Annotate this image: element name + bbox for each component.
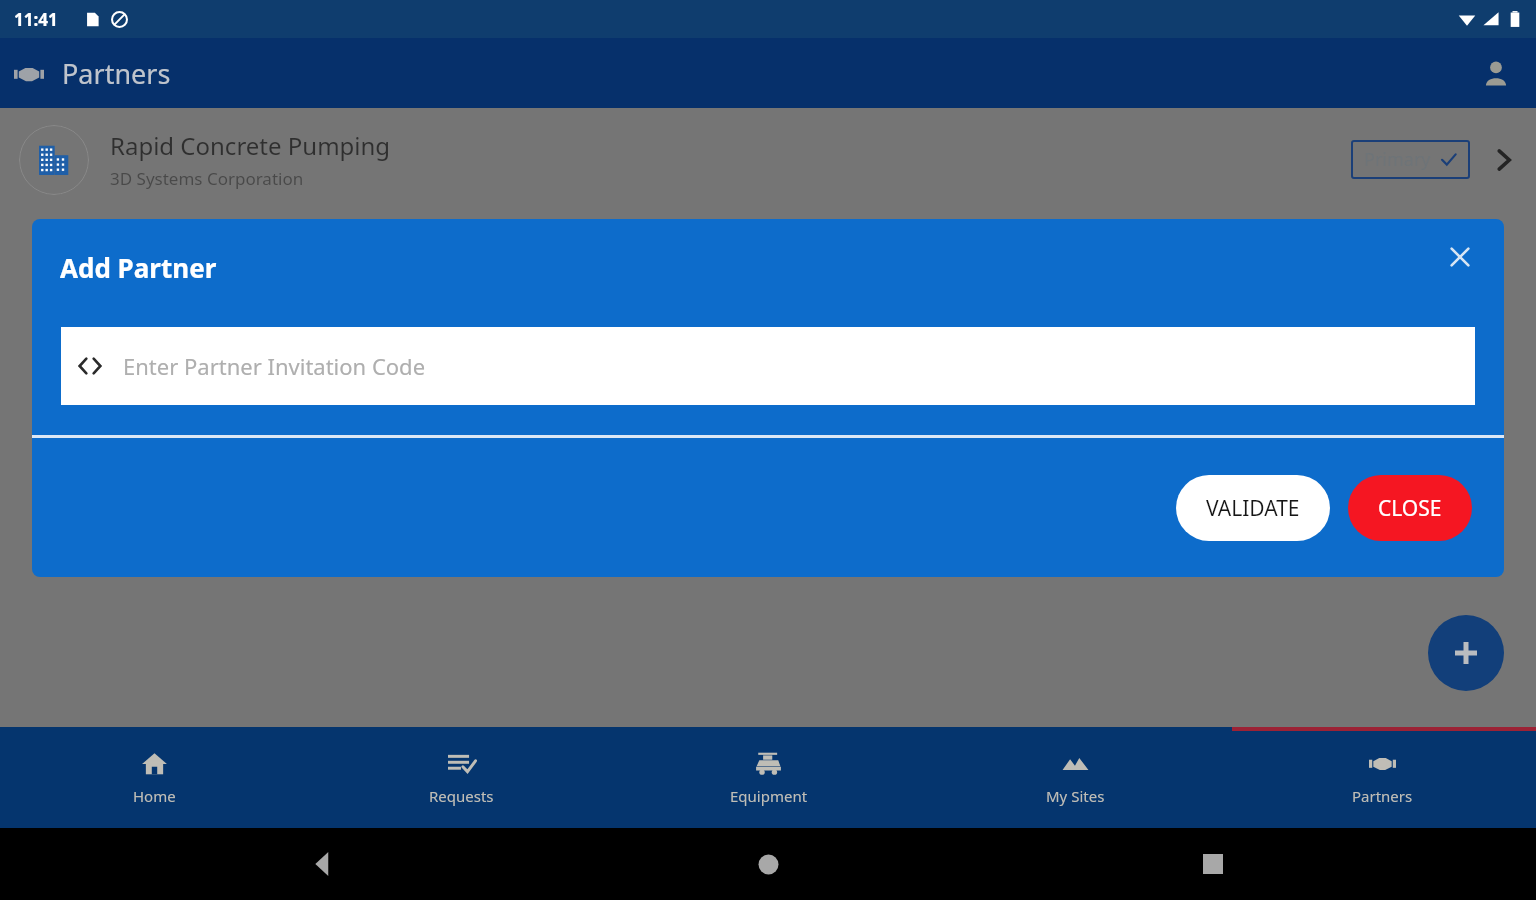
button[interactable]: Open partner bbox=[1484, 140, 1524, 180]
staticText: Rapid Concrete Pumping bbox=[110, 129, 391, 162]
button[interactable]: Primary bbox=[1351, 140, 1470, 179]
staticText: Partners bbox=[1352, 786, 1413, 806]
staticText: CLOSE bbox=[1378, 494, 1442, 523]
staticText: 11:41 bbox=[14, 8, 58, 31]
button[interactable]: Enter Partner Invitation Code bbox=[61, 327, 1475, 405]
button[interactable]: Home bbox=[745, 841, 791, 887]
staticText: Home bbox=[133, 786, 176, 806]
button[interactable]: My Sites bbox=[922, 727, 1229, 828]
staticText: Enter Partner Invitation Code bbox=[123, 351, 426, 381]
staticText: Equipment bbox=[730, 786, 808, 806]
button[interactable]: VALIDATE bbox=[1176, 475, 1330, 541]
button[interactable]: Home bbox=[0, 727, 308, 828]
staticText: Requests bbox=[429, 786, 494, 806]
staticText: VALIDATE bbox=[1206, 494, 1300, 523]
button[interactable]: Account bbox=[1474, 51, 1518, 95]
button[interactable]: Partners bbox=[1229, 727, 1536, 828]
button[interactable]: Requests bbox=[308, 727, 615, 828]
staticText: Partners bbox=[62, 55, 171, 92]
button[interactable]: Close bbox=[1436, 233, 1484, 281]
button[interactable]: Add partner bbox=[1428, 615, 1504, 691]
button[interactable]: CLOSE bbox=[1348, 475, 1472, 541]
staticText: My Sites bbox=[1046, 786, 1105, 806]
button[interactable]: Recents bbox=[1190, 841, 1236, 887]
staticText: Add Partner bbox=[60, 250, 217, 285]
button[interactable]: Equipment bbox=[615, 727, 922, 828]
button[interactable]: Back bbox=[300, 841, 346, 887]
button[interactable]: Rapid Concrete Pumping bbox=[0, 108, 1536, 211]
staticText: 3D Systems Corporation bbox=[110, 167, 304, 190]
